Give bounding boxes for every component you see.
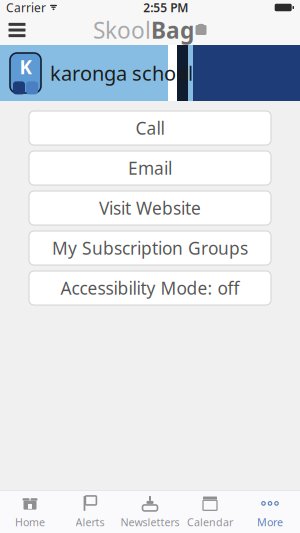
staticText: My Subscription Groups [52,236,248,259]
button[interactable]: Email [29,151,271,185]
staticText: Visit Website [99,196,201,219]
button[interactable]: Menu [0,15,34,45]
button[interactable]: My Subscription Groups [29,231,271,265]
staticText: karonga school [50,60,193,86]
staticText: Alerts [75,515,104,529]
staticText: 2:55 PM [143,0,188,15]
staticText: Email [128,156,172,179]
button[interactable]: Calendar [180,491,240,533]
staticText: Calendar [187,515,233,529]
button[interactable]: Visit Website [29,191,271,225]
button[interactable]: More [240,491,300,533]
staticText: Newsletters [120,515,179,529]
button[interactable]: Call [29,111,271,145]
staticText: Call [135,116,164,139]
staticText: Skool [93,15,151,45]
staticText: Accessibility Mode: off [60,276,239,299]
staticText: Bag [151,15,194,45]
staticText: K [19,55,31,79]
button[interactable]: Newsletters [120,491,180,533]
staticText: Home [15,515,45,529]
button[interactable]: Alerts [60,491,120,533]
button[interactable]: Accessibility Mode: off [29,271,271,305]
staticText: Carrier [6,0,46,15]
button[interactable]: Home [0,491,60,533]
staticText: More [257,515,283,529]
